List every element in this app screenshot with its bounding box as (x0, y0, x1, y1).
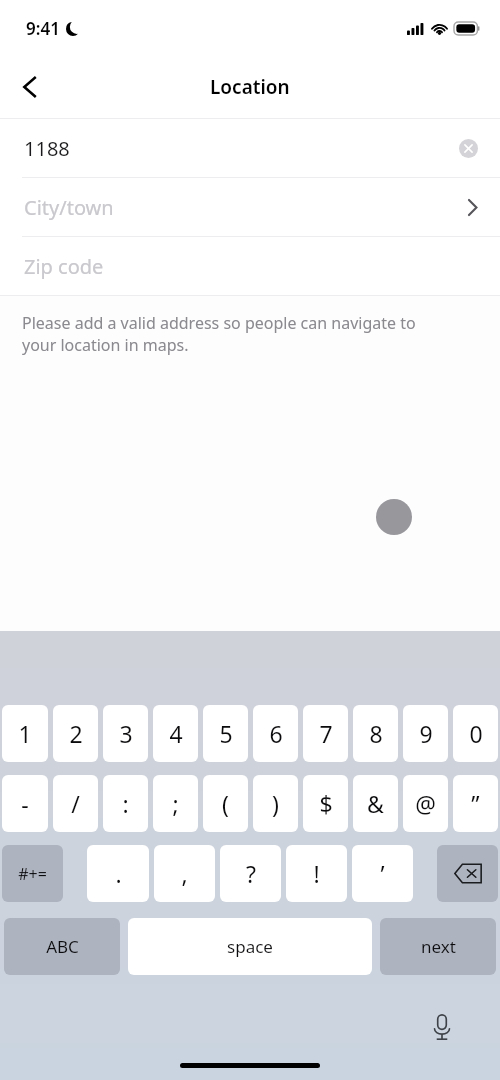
staticText: : (122, 788, 129, 819)
staticText: 6 (269, 718, 283, 749)
staticText: 0 (469, 718, 483, 749)
button[interactable]: Zip code (0, 237, 500, 295)
button[interactable]: , (154, 845, 215, 902)
staticText: 7 (319, 718, 333, 749)
button[interactable]: 0 (453, 705, 498, 762)
button[interactable]: ) (253, 775, 298, 832)
button[interactable]: & (353, 775, 398, 832)
staticText: ? (246, 858, 256, 889)
staticText: City/town (24, 194, 114, 221)
button[interactable]: Delete (437, 845, 498, 902)
button[interactable]: / (53, 775, 98, 832)
staticText: 2 (69, 718, 83, 749)
button[interactable]: ABC (4, 918, 120, 975)
button[interactable]: ” (453, 775, 498, 832)
staticText: 1 (18, 718, 32, 749)
button[interactable]: Back (4, 61, 56, 113)
staticText: , (181, 858, 188, 889)
staticText: ; (172, 788, 179, 819)
button[interactable]: 3 (103, 705, 148, 762)
staticText: @ (415, 788, 436, 819)
button[interactable]: 8 (353, 705, 398, 762)
button[interactable]: ’ (352, 845, 413, 902)
staticText: ” (471, 788, 480, 819)
staticText: Location (210, 74, 290, 100)
staticText: 1188 (24, 135, 70, 162)
button[interactable]: ( (203, 775, 248, 832)
button[interactable]: Clear text (448, 128, 488, 168)
staticText: - (21, 788, 29, 819)
staticText: & (367, 788, 384, 819)
button[interactable]: @ (403, 775, 448, 832)
button[interactable]: 4 (153, 705, 198, 762)
button[interactable]: . (87, 845, 149, 902)
staticText: ! (313, 858, 320, 889)
button[interactable]: Dictation (420, 1006, 464, 1050)
button[interactable]: ; (153, 775, 198, 832)
staticText: space (227, 935, 273, 958)
staticText: 8 (369, 718, 383, 749)
staticText: 9:41 (26, 17, 60, 40)
button[interactable]: 6 (253, 705, 298, 762)
staticText: / (71, 788, 80, 819)
button[interactable]: $ (303, 775, 348, 832)
button[interactable]: #+= (2, 845, 63, 902)
staticText: Please add a valid address so people can… (22, 312, 450, 356)
button[interactable]: - (2, 775, 48, 832)
staticText: ( (222, 788, 229, 819)
staticText: #+= (18, 863, 47, 885)
staticText: Zip code (24, 253, 104, 280)
button[interactable]: ? (220, 845, 281, 902)
staticText: ) (272, 788, 279, 819)
button[interactable]: 1 (2, 705, 48, 762)
staticText: 3 (119, 718, 133, 749)
staticText: . (115, 858, 122, 889)
staticText: 9 (419, 718, 433, 749)
button[interactable]: space (128, 918, 372, 975)
staticText: 5 (219, 718, 233, 749)
staticText: ABC (46, 935, 79, 958)
button[interactable]: 2 (53, 705, 98, 762)
button[interactable]: next (380, 918, 496, 975)
button[interactable]: City/town (0, 178, 500, 236)
staticText: 4 (169, 718, 183, 749)
button[interactable]: : (103, 775, 148, 832)
button[interactable]: 9 (403, 705, 448, 762)
staticText: next (421, 935, 456, 958)
button[interactable]: ! (286, 845, 347, 902)
button[interactable]: 7 (303, 705, 348, 762)
button[interactable]: 1188 (0, 119, 500, 177)
staticText: $ (319, 788, 333, 819)
staticText: ’ (380, 858, 385, 889)
button[interactable]: 5 (203, 705, 248, 762)
